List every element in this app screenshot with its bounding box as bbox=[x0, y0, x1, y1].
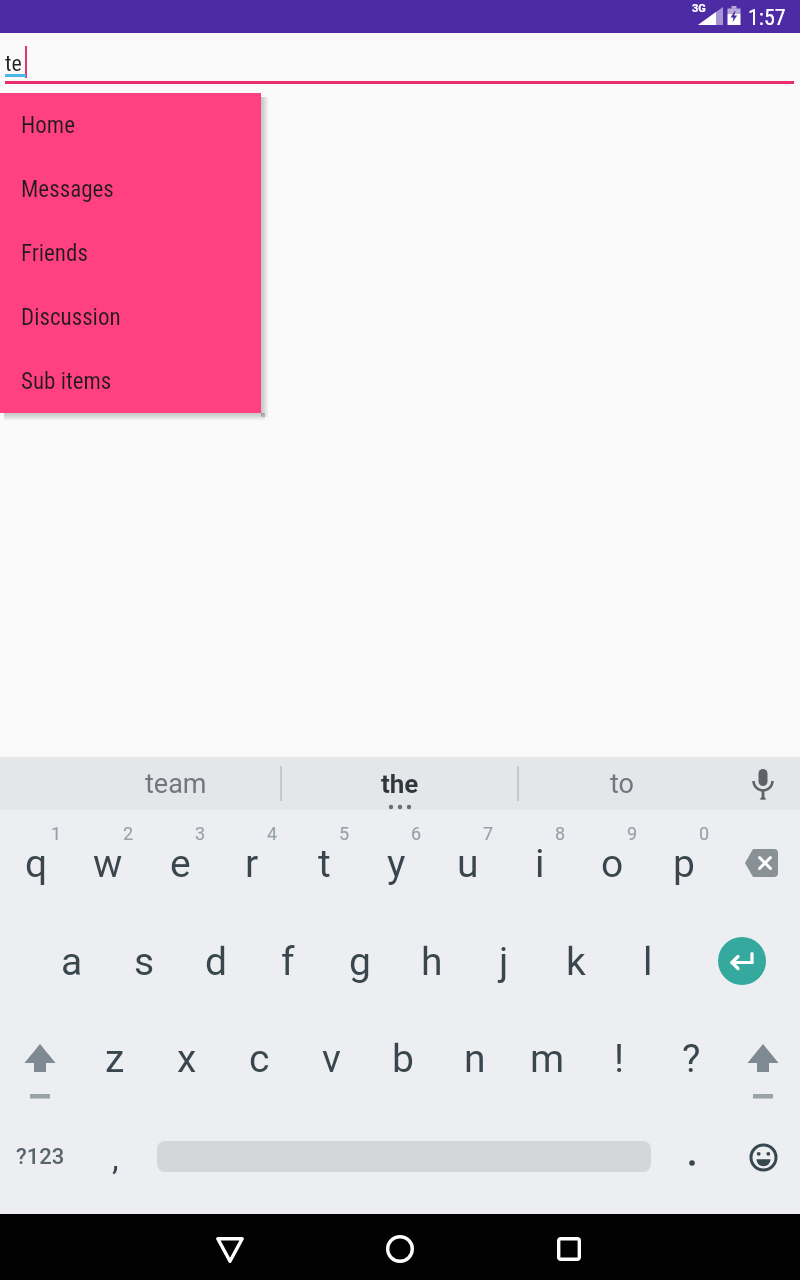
staticText: 6 bbox=[411, 823, 422, 843]
button[interactable]: k bbox=[540, 939, 612, 999]
staticText: u bbox=[457, 841, 479, 887]
staticText: s bbox=[134, 939, 155, 985]
staticText: the bbox=[381, 769, 419, 799]
staticText: m bbox=[530, 1036, 565, 1082]
button[interactable] bbox=[735, 1036, 791, 1106]
staticText: 9 bbox=[627, 823, 638, 843]
staticText: k bbox=[566, 939, 586, 985]
button[interactable]: e bbox=[144, 841, 216, 901]
staticText: Friends bbox=[21, 240, 88, 267]
staticText: ! bbox=[614, 1036, 625, 1082]
button[interactable]: c bbox=[223, 1036, 295, 1096]
staticText: b bbox=[392, 1036, 414, 1082]
staticText: v bbox=[322, 1036, 341, 1082]
staticText: l bbox=[643, 939, 653, 985]
staticText: 0 bbox=[699, 823, 710, 843]
button[interactable]: m bbox=[511, 1036, 583, 1096]
staticText: r bbox=[245, 841, 259, 887]
staticText: 1 bbox=[51, 823, 62, 843]
button[interactable]: w bbox=[72, 841, 144, 901]
staticText: ?123 bbox=[16, 1144, 65, 1170]
staticText: o bbox=[601, 841, 624, 887]
button[interactable]: y bbox=[360, 841, 432, 901]
button[interactable]: ?123 bbox=[4, 1140, 76, 1174]
button[interactable]: x bbox=[151, 1036, 223, 1096]
button[interactable]: n bbox=[439, 1036, 511, 1096]
button[interactable]: d bbox=[180, 939, 252, 999]
staticText: z bbox=[105, 1036, 125, 1082]
button[interactable]: o bbox=[576, 841, 648, 901]
button[interactable]: , bbox=[95, 1138, 135, 1188]
staticText: d bbox=[205, 939, 227, 985]
button[interactable]: r bbox=[216, 841, 288, 901]
staticText: 8 bbox=[555, 823, 566, 843]
staticText: Sub items bbox=[21, 368, 112, 395]
button[interactable]: u bbox=[432, 841, 504, 901]
button[interactable] bbox=[539, 1219, 599, 1279]
staticText: f bbox=[281, 939, 295, 985]
button[interactable] bbox=[12, 1036, 68, 1106]
button[interactable]: team bbox=[76, 757, 276, 810]
button[interactable]: to bbox=[522, 757, 722, 810]
staticText: p bbox=[673, 841, 695, 887]
button[interactable]: ! bbox=[583, 1036, 655, 1096]
staticText: e bbox=[170, 841, 191, 887]
button[interactable]: z bbox=[79, 1036, 151, 1096]
staticText: team bbox=[145, 768, 207, 800]
button[interactable] bbox=[748, 769, 778, 801]
staticText: ? bbox=[682, 1036, 701, 1082]
staticText: i bbox=[535, 841, 545, 887]
button[interactable]: l bbox=[612, 939, 684, 999]
button[interactable]: Home bbox=[0, 93, 261, 157]
button[interactable]: f bbox=[252, 939, 324, 999]
button[interactable] bbox=[744, 1138, 782, 1176]
staticText: 4 bbox=[267, 823, 278, 843]
staticText: a bbox=[61, 939, 83, 985]
button[interactable]: q bbox=[0, 841, 72, 901]
staticText: 3 bbox=[195, 823, 206, 843]
button[interactable]: j bbox=[468, 939, 540, 999]
button[interactable]: Friends bbox=[0, 221, 261, 285]
button[interactable]: s bbox=[108, 939, 180, 999]
staticText: 1:57 bbox=[748, 5, 786, 31]
button[interactable] bbox=[200, 1220, 260, 1280]
staticText: y bbox=[387, 841, 406, 887]
staticText: x bbox=[177, 1036, 197, 1082]
button[interactable]: i bbox=[504, 841, 576, 901]
staticText: h bbox=[421, 939, 443, 985]
button[interactable] bbox=[672, 1138, 712, 1178]
button[interactable]: v bbox=[295, 1036, 367, 1096]
button[interactable]: Messages bbox=[0, 157, 261, 221]
staticText: 3G bbox=[692, 2, 706, 15]
button[interactable]: g bbox=[324, 939, 396, 999]
staticText: Messages bbox=[21, 176, 114, 203]
staticText: Discussion bbox=[21, 304, 121, 331]
button[interactable]: the bbox=[300, 757, 500, 810]
staticText: te bbox=[5, 51, 22, 77]
button[interactable]: Discussion bbox=[0, 285, 261, 349]
button[interactable] bbox=[718, 937, 766, 985]
staticText: , bbox=[112, 1138, 119, 1178]
staticText: 7 bbox=[483, 823, 494, 843]
staticText: w bbox=[93, 841, 123, 887]
button[interactable]: p bbox=[648, 841, 720, 901]
button[interactable]: t bbox=[288, 841, 360, 901]
button[interactable] bbox=[370, 1219, 430, 1279]
button[interactable]: a bbox=[36, 939, 108, 999]
staticText: j bbox=[499, 939, 509, 985]
staticText: q bbox=[25, 841, 48, 887]
staticText: c bbox=[249, 1036, 270, 1082]
button[interactable]: te bbox=[0, 33, 800, 85]
staticText: n bbox=[464, 1036, 486, 1082]
button[interactable] bbox=[735, 840, 787, 886]
staticText: Home bbox=[21, 112, 75, 139]
staticText: 5 bbox=[339, 823, 350, 843]
staticText: t bbox=[318, 841, 331, 887]
button[interactable]: h bbox=[396, 939, 468, 999]
staticText: g bbox=[349, 939, 371, 985]
button[interactable]: b bbox=[367, 1036, 439, 1096]
button[interactable]: ? bbox=[655, 1036, 727, 1096]
staticText: 2 bbox=[123, 823, 134, 843]
button[interactable]: Sub items bbox=[0, 349, 261, 413]
